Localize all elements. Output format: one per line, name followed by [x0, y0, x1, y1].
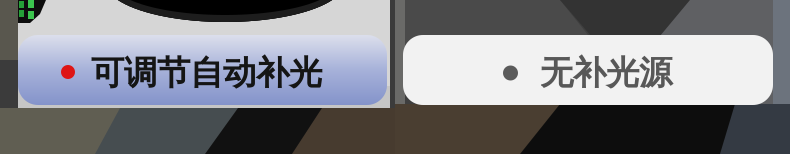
button[interactable]: 无补光源: [403, 35, 773, 105]
staticText: 可调节自动补光: [91, 52, 322, 93]
button[interactable]: 可调节自动补光: [18, 35, 387, 105]
staticText: 无补光源: [540, 52, 672, 93]
